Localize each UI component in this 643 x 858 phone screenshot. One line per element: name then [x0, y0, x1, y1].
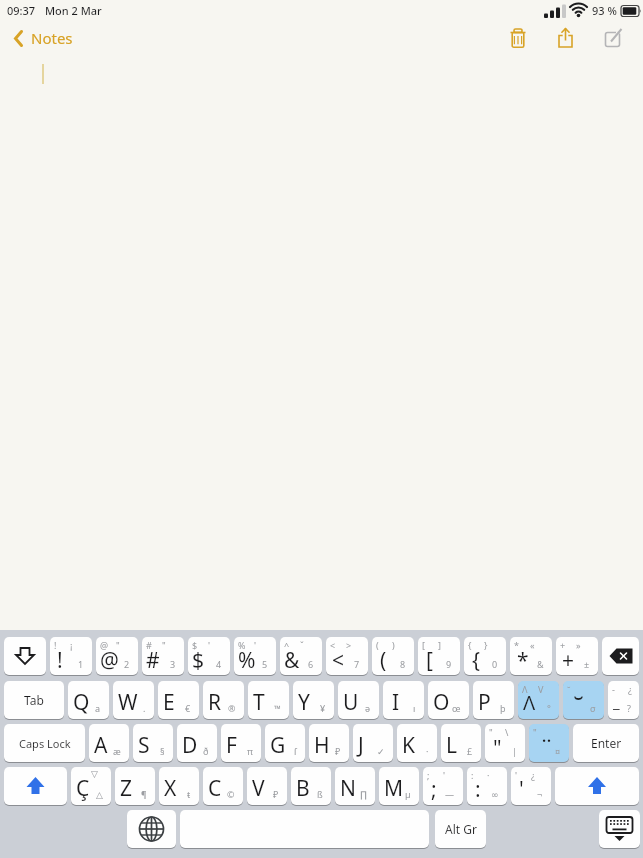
staticText: E	[163, 688, 175, 717]
button[interactable]: Ç	[71, 767, 111, 805]
button[interactable]	[4, 637, 46, 675]
staticText: Λ	[523, 689, 536, 716]
staticText: 4	[216, 658, 222, 670]
button[interactable]	[4, 767, 67, 805]
button[interactable]: I	[383, 681, 424, 719]
button[interactable]: E	[158, 681, 199, 719]
button[interactable]: %	[234, 637, 276, 675]
button[interactable]: N	[335, 767, 375, 805]
button[interactable]: "	[485, 724, 525, 762]
button[interactable]: (	[372, 637, 414, 675]
staticText: ·	[487, 769, 490, 781]
button[interactable]: O	[428, 681, 469, 719]
button[interactable]: F	[221, 724, 261, 762]
button[interactable]	[605, 29, 622, 47]
staticText: <	[332, 646, 345, 675]
staticText: C	[208, 774, 222, 803]
button[interactable]: Tab	[4, 681, 64, 719]
staticText: T	[253, 688, 265, 717]
button[interactable]: &	[280, 637, 322, 675]
staticText: {	[472, 646, 480, 675]
button[interactable]: C	[203, 767, 243, 805]
button[interactable]: P	[473, 681, 514, 719]
button[interactable]: @	[96, 637, 138, 675]
button[interactable]: Notes	[14, 28, 73, 48]
button[interactable]: Caps Lock	[4, 724, 85, 762]
button[interactable]: K	[397, 724, 437, 762]
staticText: Λ	[522, 683, 528, 695]
button[interactable]: U	[338, 681, 379, 719]
button[interactable]: !	[50, 637, 92, 675]
staticText: *	[517, 646, 529, 675]
button[interactable]: :	[467, 767, 507, 805]
button[interactable]: #	[142, 637, 184, 675]
button[interactable]: +	[556, 637, 598, 675]
button[interactable]: Enter	[573, 724, 639, 762]
staticText: !	[54, 639, 57, 651]
button[interactable]: X	[159, 767, 199, 805]
button[interactable]: [	[418, 637, 460, 675]
button[interactable]: H	[309, 724, 349, 762]
staticText: «	[530, 639, 535, 651]
staticText: ¿	[531, 769, 535, 781]
button[interactable]: Q	[68, 681, 109, 719]
staticText: $	[192, 646, 205, 675]
button[interactable]: ;	[423, 767, 463, 805]
button[interactable]: M	[379, 767, 419, 805]
staticText: ˘	[567, 683, 571, 695]
button[interactable]	[555, 767, 639, 805]
staticText: þ	[500, 702, 506, 714]
button[interactable]: '	[511, 767, 551, 805]
staticText: ŧ	[187, 788, 191, 800]
staticText: σ	[590, 702, 596, 714]
button[interactable]	[180, 810, 429, 848]
button[interactable]: _	[608, 681, 639, 719]
button[interactable]: *	[510, 637, 552, 675]
button[interactable]: ˘	[563, 681, 604, 719]
button[interactable]: ¨	[529, 724, 569, 762]
staticText: L	[446, 731, 458, 760]
button[interactable]	[602, 637, 639, 675]
staticText: '	[515, 769, 518, 781]
staticText: 1	[78, 658, 84, 670]
staticText: D	[182, 731, 198, 760]
button[interactable]: V	[247, 767, 287, 805]
button[interactable]	[558, 28, 573, 48]
button[interactable]: A	[89, 724, 129, 762]
button[interactable]	[599, 810, 640, 848]
staticText: Z	[120, 774, 133, 803]
button[interactable]: B	[291, 767, 331, 805]
staticText: "	[493, 734, 502, 763]
staticText: Mon 2 Mar	[45, 3, 102, 18]
staticText: ·	[426, 745, 429, 757]
button[interactable]: {	[464, 637, 506, 675]
button[interactable]	[127, 810, 176, 848]
button[interactable]: Λ	[518, 681, 559, 719]
staticText: \	[505, 726, 509, 738]
button[interactable]: Alt Gr	[435, 810, 486, 848]
button[interactable]: <	[326, 637, 368, 675]
staticText: N	[340, 774, 356, 803]
button[interactable]	[510, 28, 526, 48]
staticText: #	[146, 639, 152, 651]
button[interactable]: S	[133, 724, 173, 762]
staticText: ˇ	[300, 639, 304, 651]
button[interactable]: D	[177, 724, 217, 762]
button[interactable]: $	[188, 637, 230, 675]
button[interactable]: L	[441, 724, 481, 762]
staticText: }	[484, 639, 488, 651]
button[interactable]: Y	[293, 681, 334, 719]
button[interactable]: G	[265, 724, 305, 762]
staticText: ^	[284, 639, 290, 651]
button[interactable]: R	[203, 681, 244, 719]
staticText: ¥	[320, 702, 326, 714]
button[interactable]: T	[248, 681, 289, 719]
button[interactable]: W	[113, 681, 154, 719]
staticText: ₽	[335, 745, 341, 757]
staticText: @	[100, 639, 109, 651]
staticText: ə	[365, 702, 371, 714]
button[interactable]: J	[353, 724, 393, 762]
staticText: 9	[446, 658, 452, 670]
button[interactable]: Z	[115, 767, 155, 805]
staticText: Notes	[31, 28, 73, 48]
